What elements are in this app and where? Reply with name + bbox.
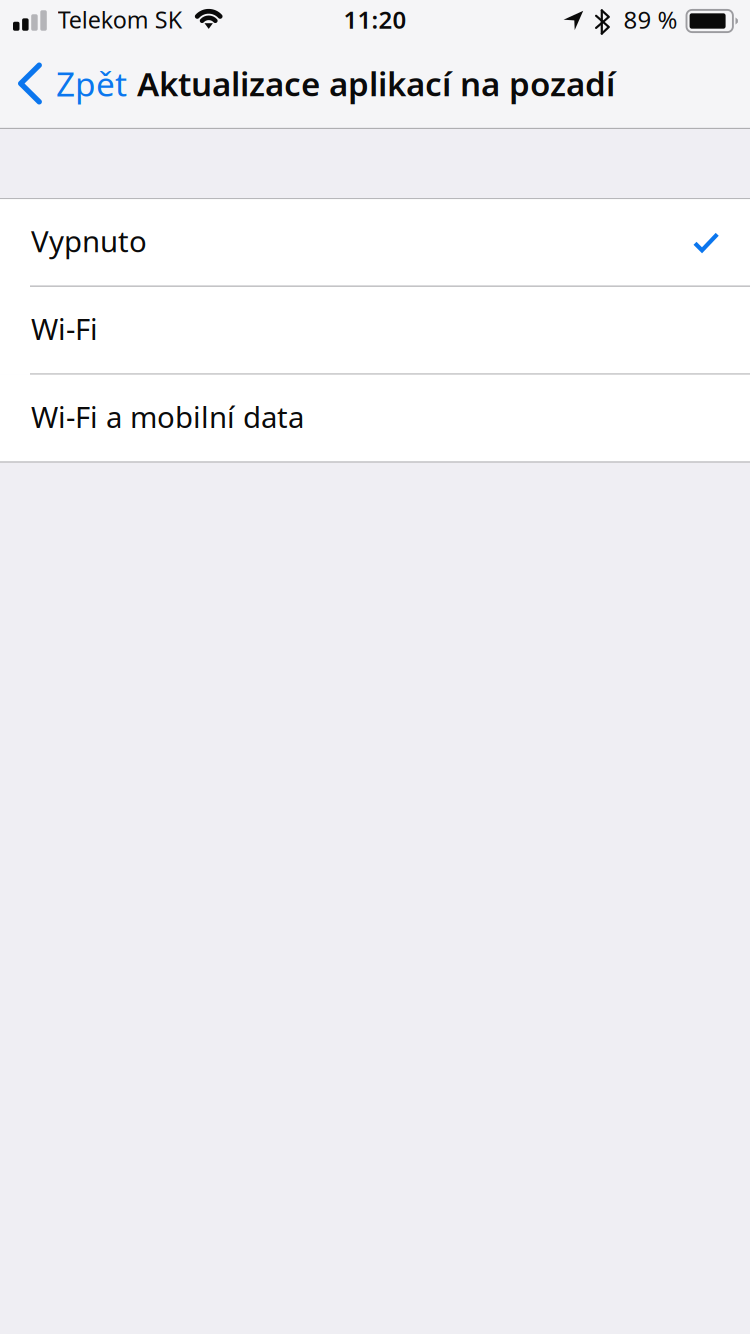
staticText: Vypnuto [31, 221, 147, 260]
staticText: Telekom SK [58, 4, 182, 35]
button[interactable]: Zpět [0, 42, 139, 125]
button[interactable]: Vypnuto [0, 199, 750, 287]
staticText: Zpět [56, 61, 127, 106]
staticText: Wi-Fi a mobilní data [31, 397, 304, 436]
button[interactable]: Wi-Fi a mobilní data [0, 375, 750, 461]
staticText: Wi-Fi [31, 309, 98, 348]
staticText: 11:20 [343, 4, 406, 35]
staticText: Aktualizace aplikací na pozadí [137, 61, 615, 106]
staticText: 89 % [623, 4, 677, 35]
button[interactable]: Wi-Fi [0, 287, 750, 375]
